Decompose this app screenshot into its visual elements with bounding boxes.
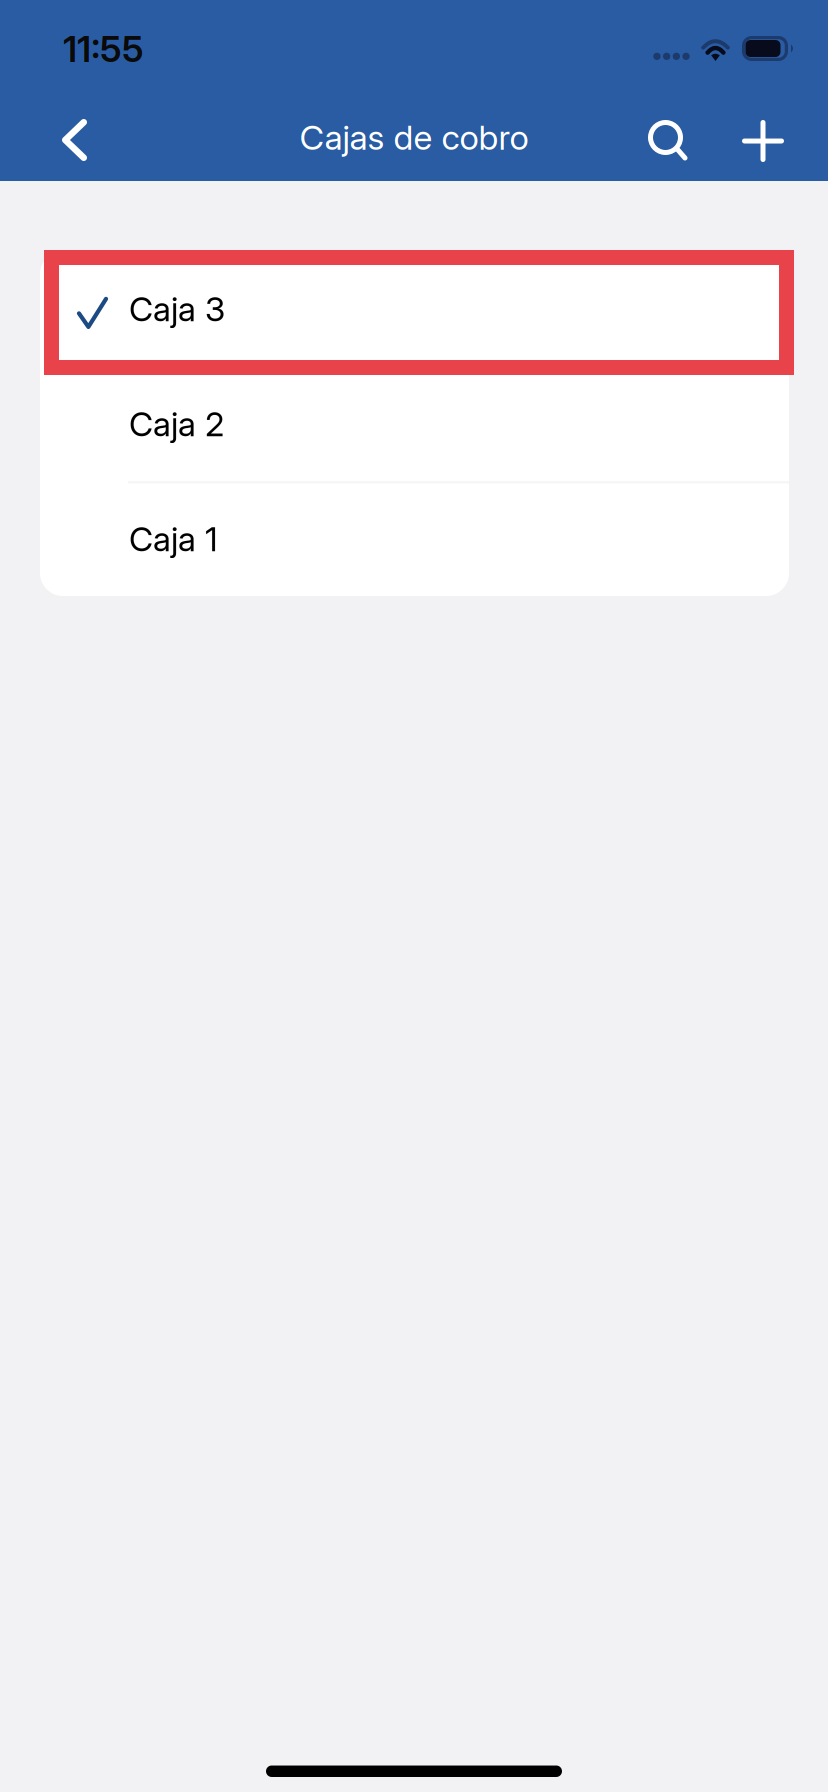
staticText: Caja 2 [129,404,224,444]
button[interactable]: Caja 3 [40,251,789,366]
staticText: Caja 3 [129,289,225,329]
button[interactable]: Caja 2 [40,366,789,481]
button[interactable]: Back [0,94,117,181]
staticText: Cajas de cobro [299,117,528,158]
button[interactable]: Caja 1 [40,481,789,596]
staticText: Caja 1 [129,519,218,559]
staticText: 11:55 [63,27,144,71]
button[interactable]: Search [640,94,720,181]
button[interactable]: Add [720,94,828,181]
